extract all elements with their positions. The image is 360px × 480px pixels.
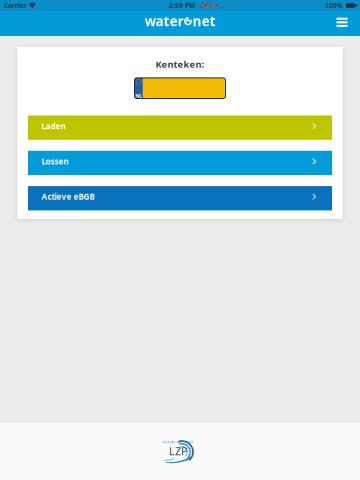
staticText: Laden — [41, 121, 65, 131]
staticText: Actieve eBGB — [41, 191, 94, 202]
staticText: Carrier — [4, 1, 27, 10]
staticText: Lossen — [41, 156, 68, 167]
staticText: net — [193, 12, 216, 30]
staticText: water — [144, 12, 183, 30]
staticText: Kenteken: — [155, 58, 204, 70]
button[interactable]: Laden — [28, 115, 332, 140]
staticText: 2:59 PM — [169, 1, 195, 10]
button[interactable]: Lossen — [28, 151, 332, 175]
staticText: GPS — [200, 1, 213, 10]
button[interactable]: Menu — [324, 11, 360, 36]
staticText: LZP — [169, 444, 187, 458]
button[interactable]: Actieve eBGB — [28, 186, 332, 210]
staticText: 100% — [325, 1, 343, 10]
staticText: NL — [135, 92, 142, 99]
staticText: regionale water passen — [161, 440, 193, 444]
